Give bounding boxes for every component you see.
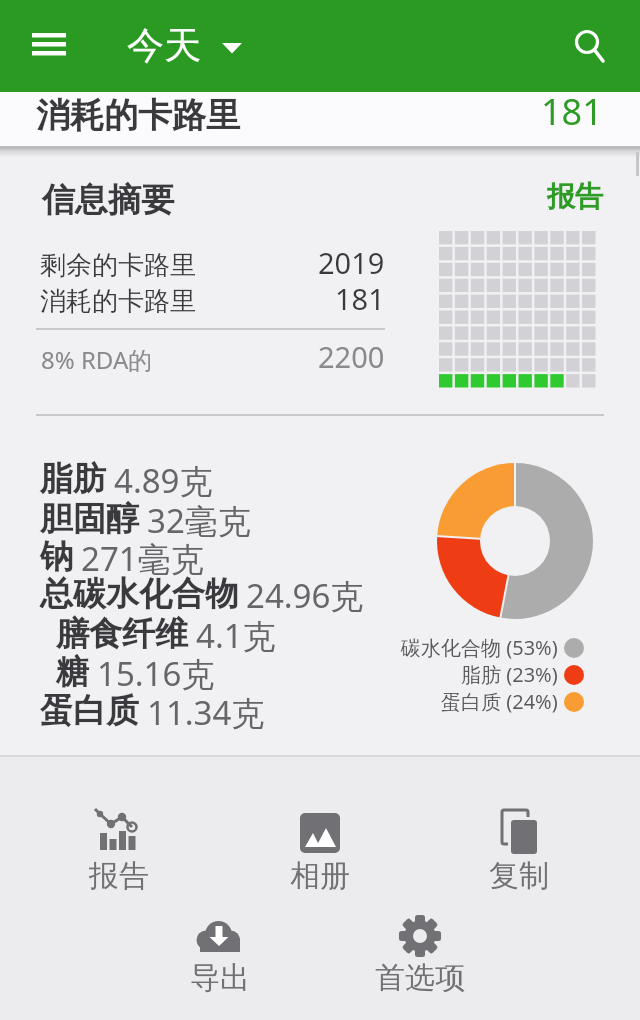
staticText: 今天	[127, 22, 201, 69]
button[interactable]: 首选项	[355, 906, 485, 1002]
button[interactable]	[560, 18, 616, 74]
staticText: 蛋白质 (24%)	[441, 688, 558, 715]
staticText: 2019	[318, 243, 385, 282]
button[interactable]: 今天	[110, 14, 260, 78]
staticText: 32毫克	[147, 498, 251, 543]
staticText: 膳食纤维	[56, 613, 188, 655]
staticText: 消耗的卡路里	[36, 94, 240, 137]
staticText: 11.34克	[147, 690, 265, 735]
staticText: 15.16克	[97, 651, 215, 696]
staticText: 8% RDA的	[41, 343, 153, 376]
staticText: 报告	[89, 857, 149, 895]
staticText: 剩余的卡路里	[40, 249, 196, 282]
button[interactable]: 消耗的卡路里	[0, 92, 640, 146]
staticText: 蛋白质	[40, 690, 139, 732]
staticText: 复制	[489, 857, 549, 895]
staticText: 信息摘要	[42, 179, 174, 221]
staticText: 导出	[190, 959, 250, 997]
staticText: 消耗的卡路里	[40, 285, 196, 318]
button[interactable]: 导出	[155, 906, 285, 1002]
staticText: 总碳水化合物	[40, 573, 238, 615]
button[interactable]: 报告	[54, 800, 184, 900]
staticText: 首选项	[375, 959, 465, 997]
staticText: 4.89克	[114, 458, 213, 503]
staticText: 4.1克	[196, 613, 276, 658]
staticText: 脂肪 (23%)	[461, 661, 558, 688]
button[interactable]: 复制	[454, 802, 584, 900]
button[interactable]: 相册	[255, 802, 385, 900]
staticText: 181	[541, 87, 603, 136]
staticText: 报告	[547, 179, 603, 214]
staticText: 碳水化合物 (53%)	[401, 634, 558, 661]
staticText: 271毫克	[81, 536, 204, 581]
staticText: 脂肪	[40, 458, 106, 500]
staticText: 2200	[318, 337, 385, 376]
staticText: 糖	[56, 651, 89, 693]
button[interactable]	[20, 22, 78, 70]
staticText: 181	[335, 279, 385, 318]
staticText: 胆固醇	[40, 498, 139, 540]
staticText: 相册	[290, 857, 350, 895]
staticText: 钠	[40, 536, 73, 578]
button[interactable]: 报告	[500, 176, 610, 216]
staticText: 24.96克	[246, 573, 364, 618]
